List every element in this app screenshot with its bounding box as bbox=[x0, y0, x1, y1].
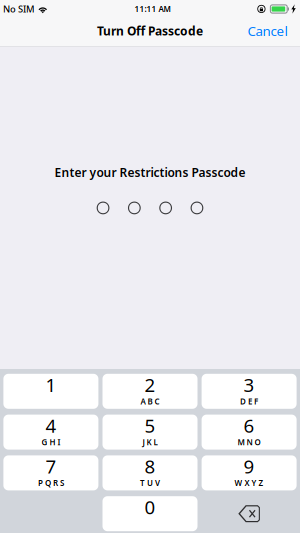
staticText: 7 bbox=[45, 454, 56, 479]
staticText: 9 bbox=[244, 454, 255, 479]
staticText: G H I bbox=[41, 437, 60, 447]
button[interactable]: 3 bbox=[202, 374, 297, 409]
staticText: 3 bbox=[244, 372, 255, 397]
staticText: 4 bbox=[45, 413, 56, 438]
button[interactable]: Delete bbox=[202, 496, 297, 531]
staticText: 0 bbox=[144, 495, 155, 519]
button[interactable]: 4 bbox=[3, 415, 98, 450]
button[interactable]: 0 bbox=[102, 496, 197, 531]
button[interactable]: 9 bbox=[202, 455, 297, 490]
staticText: 11:11 AM bbox=[134, 4, 170, 14]
button[interactable]: 6 bbox=[202, 415, 297, 450]
staticText: W X Y Z bbox=[235, 478, 264, 488]
staticText: Cancel bbox=[247, 22, 287, 40]
staticText: A B C bbox=[140, 396, 159, 407]
staticText: 1 bbox=[45, 372, 56, 397]
button[interactable]: Cancel bbox=[237, 18, 300, 46]
staticText: T U V bbox=[140, 478, 160, 488]
button[interactable]: 7 bbox=[3, 455, 98, 490]
staticText: D E F bbox=[240, 396, 258, 407]
button[interactable]: 1 bbox=[3, 374, 98, 409]
staticText: 6 bbox=[244, 413, 255, 438]
staticText: P Q R S bbox=[38, 478, 64, 488]
staticText: 8 bbox=[144, 454, 155, 479]
button[interactable]: 5 bbox=[102, 415, 197, 450]
staticText: No SIM bbox=[3, 3, 35, 15]
staticText: Enter your Restrictions Passcode bbox=[54, 164, 245, 180]
staticText: 5 bbox=[144, 413, 155, 438]
staticText: 2 bbox=[144, 372, 155, 397]
staticText: M N O bbox=[238, 437, 261, 447]
staticText: J K L bbox=[142, 437, 157, 447]
button[interactable]: 2 bbox=[102, 374, 197, 409]
staticText: Turn Off Passcode bbox=[97, 23, 203, 39]
button[interactable]: 8 bbox=[102, 455, 197, 490]
